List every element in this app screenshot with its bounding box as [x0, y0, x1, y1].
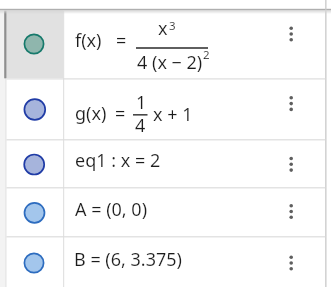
button[interactable]: [22, 153, 46, 177]
staticText: x + 1: [153, 102, 193, 127]
button[interactable]: [279, 251, 303, 275]
button[interactable]: [22, 201, 46, 225]
staticText: =: [115, 101, 126, 126]
staticText: f(x): [75, 28, 102, 53]
button[interactable]: [279, 22, 303, 46]
staticText: =: [116, 28, 127, 53]
staticText: 4: [135, 113, 146, 138]
button[interactable]: [279, 200, 303, 224]
staticText: x: [158, 16, 168, 41]
button[interactable]: [279, 92, 303, 116]
staticText: 3: [169, 18, 176, 34]
staticText: B = (6, 3.375): [74, 247, 182, 272]
staticText: 2: [203, 47, 210, 63]
button[interactable]: [22, 32, 46, 56]
button[interactable]: [22, 98, 46, 122]
button[interactable]: [22, 251, 46, 275]
button[interactable]: [279, 152, 303, 176]
staticText: 4 (x − 2): [137, 50, 203, 75]
staticText: eq1 : x = 2: [75, 148, 161, 173]
button[interactable]: [7, 10, 326, 78]
button[interactable]: [7, 236, 326, 287]
staticText: 1: [136, 90, 147, 115]
button[interactable]: [7, 187, 326, 236]
staticText: A = (0, 0): [75, 197, 148, 222]
staticText: g(x): [75, 101, 107, 126]
button[interactable]: [7, 139, 326, 187]
button[interactable]: [7, 78, 326, 139]
